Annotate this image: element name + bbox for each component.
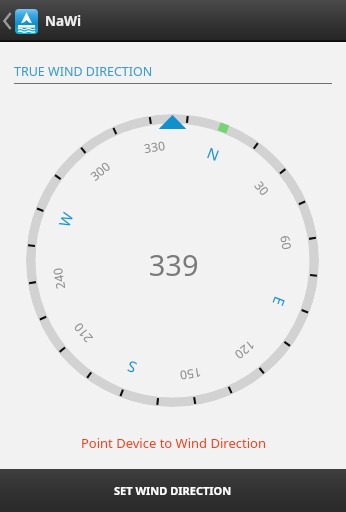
button[interactable]: Back	[0, 0, 15, 42]
staticText: SET WIND DIRECTION	[114, 483, 232, 498]
staticText: TRUE WIND DIRECTION	[14, 63, 153, 80]
staticText: Point Device to Wind Direction	[81, 434, 266, 452]
staticText: NaWi	[45, 12, 82, 30]
button[interactable]: Compass dial, heading 339 degrees	[26, 114, 319, 407]
button[interactable]: SET WIND DIRECTION	[0, 469, 346, 512]
